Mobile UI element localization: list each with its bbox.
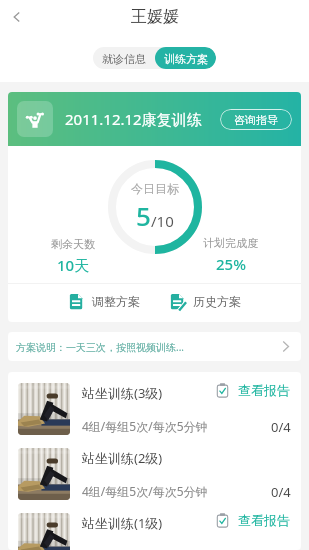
staticText: 王媛媛 — [131, 7, 179, 27]
staticText: 站坐训练(3级) — [82, 384, 163, 402]
staticText: 0/4 — [271, 483, 291, 501]
staticText: 历史方案 — [193, 294, 241, 309]
button[interactable]: Back — [0, 0, 33, 33]
button[interactable]: 训练方案 — [155, 47, 216, 69]
staticText: 0/4 — [271, 418, 291, 436]
button[interactable]: 就诊信息 — [93, 47, 155, 69]
staticText: 4组/每组5次/每次5分钟 — [82, 418, 208, 434]
staticText: 2011.12.12康复训练 — [65, 109, 202, 129]
staticText: 今日目标 — [131, 181, 179, 196]
button[interactable]: 站坐训练(3级) — [8, 372, 301, 437]
button[interactable]: 方案说明：一天三次，按照视频训练... — [8, 332, 301, 361]
button[interactable]: 查看报告 — [214, 380, 292, 400]
staticText: /10 — [151, 211, 174, 231]
staticText: 10天 — [57, 255, 90, 275]
staticText: 剩余天数 — [51, 237, 95, 251]
staticText: 调整方案 — [92, 294, 140, 309]
button[interactable]: 站坐训练(2级) — [8, 437, 301, 502]
staticText: 站坐训练(1级) — [82, 514, 163, 532]
staticText: 4组/每组5次/每次5分钟 — [82, 483, 208, 499]
staticText: 站坐训练(2级) — [82, 449, 163, 467]
button[interactable]: 历史方案 — [165, 287, 246, 316]
button[interactable]: 调整方案 — [64, 287, 145, 316]
staticText: 计划完成度 — [203, 236, 258, 250]
staticText: 咨询指导 — [234, 113, 278, 127]
staticText: 方案说明：一天三次，按照视频训练... — [16, 340, 185, 354]
staticText: 25% — [216, 254, 246, 274]
staticText: 就诊信息 — [102, 52, 146, 66]
staticText: 5 — [136, 198, 151, 233]
button[interactable]: 站坐训练(1级) — [8, 502, 301, 550]
button[interactable]: 咨询指导 — [220, 109, 292, 130]
button[interactable]: 查看报告 — [214, 510, 292, 530]
staticText: 训练方案 — [164, 52, 208, 66]
staticText: 查看报告 — [238, 382, 290, 398]
staticText: 查看报告 — [238, 512, 290, 528]
